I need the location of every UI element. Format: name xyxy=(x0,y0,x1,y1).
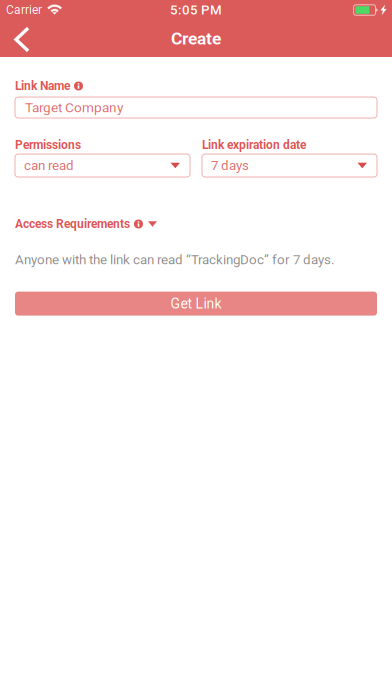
staticText: Anyone with the link can read “TrackingD… xyxy=(15,252,335,268)
button[interactable]: Get Link xyxy=(15,292,377,316)
staticText: Get Link xyxy=(170,295,221,312)
staticText: Link Name xyxy=(15,79,70,93)
staticText: Create xyxy=(171,28,221,49)
button[interactable]: Back xyxy=(0,20,40,57)
staticText: 7 days xyxy=(211,158,249,173)
staticText: Access Requirements xyxy=(15,217,130,231)
staticText: can read xyxy=(24,158,74,173)
staticText: Carrier xyxy=(6,3,42,17)
button[interactable]: 7 days xyxy=(202,154,377,177)
staticText: Link expiration date xyxy=(202,138,306,152)
staticText: Permissions xyxy=(15,138,81,152)
staticText: Target Company xyxy=(25,99,123,115)
button[interactable]: can read xyxy=(15,154,190,177)
staticText: 5:05 PM xyxy=(170,2,222,18)
